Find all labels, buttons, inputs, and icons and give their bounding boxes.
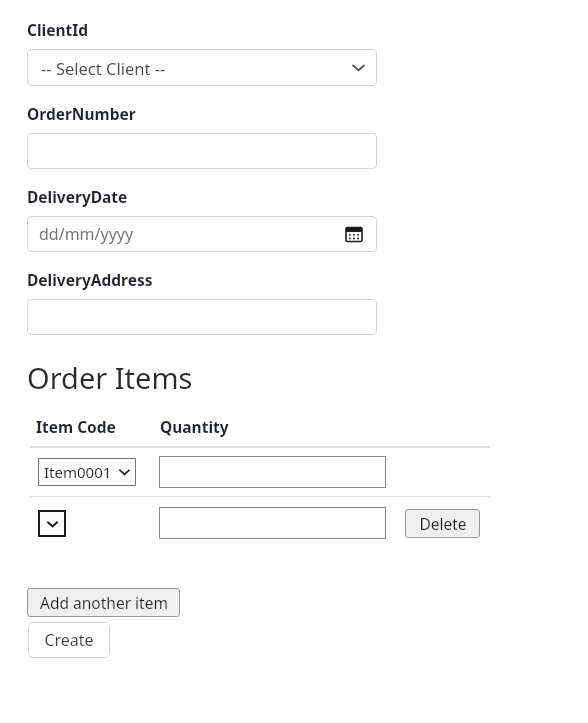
staticText: Add another item bbox=[40, 592, 168, 613]
button[interactable]: -- Select Client -- bbox=[27, 49, 377, 86]
button[interactable]: Add another item bbox=[27, 588, 180, 617]
staticText: DeliveryAddress bbox=[27, 269, 153, 290]
staticText: Create bbox=[44, 629, 94, 651]
staticText: ClientId bbox=[27, 19, 89, 40]
staticText: Item0001 bbox=[44, 462, 119, 482]
staticText: OrderNumber bbox=[27, 103, 136, 124]
staticText: dd/mm/yyyy bbox=[39, 223, 343, 245]
button[interactable] bbox=[159, 507, 386, 539]
button[interactable]: Create bbox=[28, 622, 110, 658]
staticText: Delete bbox=[419, 513, 467, 534]
button[interactable]: Item0001 bbox=[38, 458, 136, 486]
button[interactable]: dd/mm/yyyy bbox=[27, 216, 377, 252]
staticText: Item Code bbox=[36, 416, 160, 437]
button[interactable]: Open calendar picker bbox=[343, 223, 365, 245]
button[interactable]: Delete bbox=[405, 509, 480, 538]
button[interactable] bbox=[27, 133, 377, 169]
button[interactable]: Select item code bbox=[38, 510, 66, 537]
staticText: DeliveryDate bbox=[27, 186, 128, 207]
staticText: Quantity bbox=[160, 416, 229, 437]
staticText: -- Select Client -- bbox=[41, 57, 352, 79]
staticText: Order Items bbox=[27, 358, 193, 397]
button[interactable] bbox=[27, 299, 377, 335]
button[interactable] bbox=[159, 456, 386, 488]
